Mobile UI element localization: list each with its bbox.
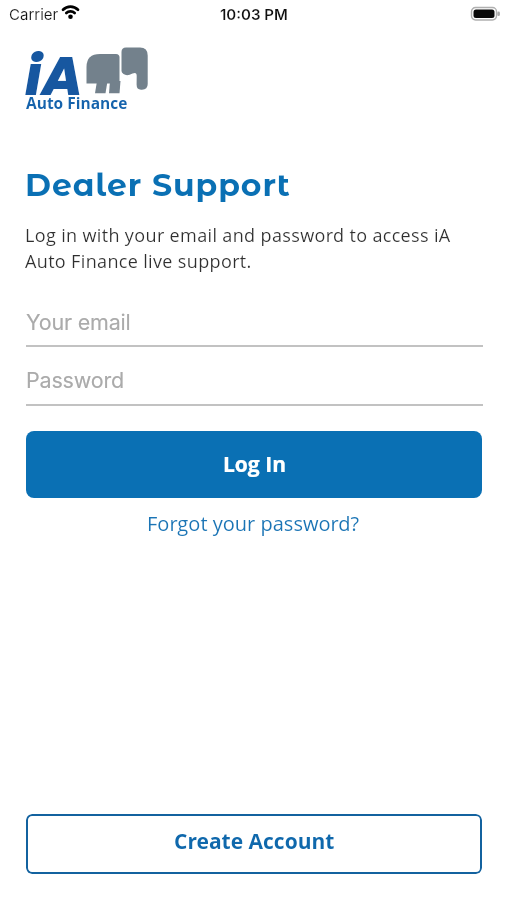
button[interactable]: Your email xyxy=(26,300,483,347)
button[interactable]: Password xyxy=(26,359,483,406)
staticText: Create Account xyxy=(174,827,335,856)
button[interactable]: Log In xyxy=(26,431,482,498)
staticText: Your email xyxy=(26,309,131,335)
staticText: Carrier xyxy=(9,5,59,23)
staticText: 10:03 PM xyxy=(220,5,288,23)
staticText: Dealer Support xyxy=(25,166,291,204)
staticText: Password xyxy=(26,367,124,393)
staticText: Forgot your password? xyxy=(147,510,360,537)
button[interactable]: Forgot your password? xyxy=(147,510,360,537)
staticText: Log In xyxy=(223,450,286,479)
button[interactable]: Create Account xyxy=(26,814,482,874)
staticText: Auto Finance xyxy=(26,92,128,113)
staticText: iA xyxy=(25,38,83,114)
staticText: Log in with your email and password to a… xyxy=(25,223,495,274)
